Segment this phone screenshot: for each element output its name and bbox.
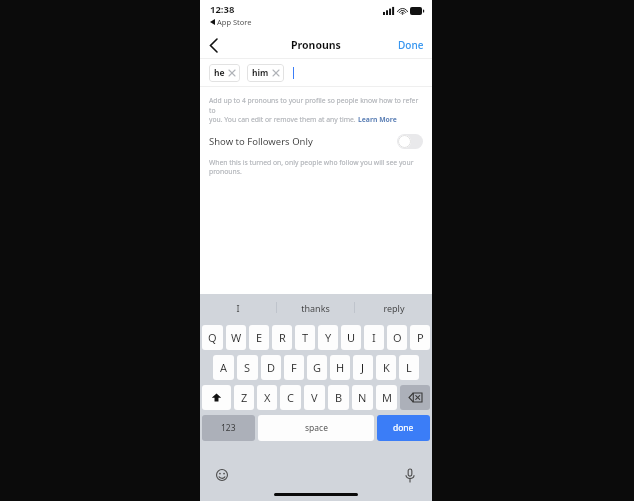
staticText: L	[406, 360, 412, 375]
staticText: O	[393, 330, 402, 345]
staticText: pronouns.	[209, 167, 242, 176]
button[interactable]: Backspace	[400, 385, 430, 410]
staticText: Learn More	[358, 115, 397, 124]
button[interactable]: N	[352, 385, 373, 410]
staticText: E	[256, 330, 263, 345]
button[interactable]: Z	[234, 385, 254, 410]
button[interactable]: D	[261, 355, 281, 380]
staticText: Show to Followers Only	[209, 135, 313, 148]
button[interactable]: P	[410, 325, 430, 350]
staticText: C	[287, 390, 294, 405]
button[interactable]: thanks	[277, 294, 354, 321]
button[interactable]: T	[295, 325, 315, 350]
button[interactable]: M	[376, 385, 397, 410]
staticText: I	[372, 330, 376, 345]
staticText: reply	[383, 302, 405, 314]
button[interactable]: Y	[318, 325, 338, 350]
staticText: R	[279, 330, 286, 345]
staticText: X	[264, 390, 271, 405]
button[interactable]: K	[376, 355, 396, 380]
button[interactable]: X	[257, 385, 277, 410]
staticText: I	[236, 302, 240, 314]
button[interactable]: Show to Followers Only	[200, 124, 432, 158]
button[interactable]: I	[200, 294, 276, 321]
staticText: he	[214, 67, 225, 79]
button[interactable]: B	[328, 385, 349, 410]
staticText: K	[383, 360, 390, 375]
button[interactable]: O	[387, 325, 407, 350]
staticText: G	[313, 360, 322, 375]
staticText: him	[252, 67, 269, 79]
button[interactable]: Q	[202, 325, 223, 350]
staticText: V	[311, 390, 318, 405]
staticText: P	[417, 330, 424, 345]
button[interactable]: Learn More	[358, 115, 397, 124]
button[interactable]: L	[399, 355, 419, 380]
staticText: Add up to 4 pronouns to your profile so …	[209, 96, 420, 115]
staticText: Z	[241, 390, 248, 405]
staticText: App Store	[217, 17, 252, 27]
staticText: U	[347, 330, 356, 345]
button[interactable]: 123	[202, 415, 255, 441]
staticText: you. You can edit or remove them at any …	[209, 115, 358, 124]
staticText: done	[393, 422, 414, 434]
staticText: Pronouns	[291, 38, 341, 52]
staticText: B	[335, 390, 343, 405]
button[interactable]: Show to Followers Only toggle	[397, 134, 423, 149]
button[interactable]: A	[213, 355, 234, 380]
staticText: H	[336, 360, 345, 375]
staticText: M	[382, 390, 392, 405]
button[interactable]: J	[353, 355, 373, 380]
staticText: 12:38	[210, 3, 235, 16]
button[interactable]: V	[304, 385, 325, 410]
button[interactable]: R	[272, 325, 292, 350]
button[interactable]: him	[247, 64, 284, 82]
staticText: A	[220, 360, 228, 375]
button[interactable]: Dictation	[402, 467, 418, 483]
staticText: thanks	[301, 302, 330, 314]
staticText: N	[358, 390, 367, 405]
button[interactable]: H	[330, 355, 350, 380]
staticText: Done	[398, 38, 424, 52]
button[interactable]: space	[258, 415, 374, 441]
button[interactable]: reply	[355, 294, 432, 321]
staticText: S	[244, 360, 251, 375]
staticText: 123	[221, 422, 236, 434]
button[interactable]: W	[226, 325, 246, 350]
staticText: Q	[208, 330, 217, 345]
button[interactable]: G	[307, 355, 327, 380]
staticText: T	[302, 330, 309, 345]
button[interactable]: Done	[390, 34, 432, 56]
staticText: W	[231, 330, 242, 345]
staticText: D	[267, 360, 276, 375]
button[interactable]: Shift	[202, 385, 231, 410]
button[interactable]: E	[249, 325, 269, 350]
button[interactable]: U	[341, 325, 361, 350]
button[interactable]: done	[377, 415, 430, 441]
staticText: Y	[325, 330, 332, 345]
button[interactable]: Back	[200, 32, 226, 58]
button[interactable]: I	[364, 325, 384, 350]
button[interactable]: S	[237, 355, 258, 380]
staticText: J	[361, 360, 365, 375]
button[interactable]: Emoji	[214, 467, 230, 483]
staticText: When this is turned on, only people who …	[209, 158, 414, 167]
staticText: F	[291, 360, 297, 375]
staticText: space	[305, 422, 328, 434]
button[interactable]: he	[209, 64, 240, 82]
button[interactable]: F	[284, 355, 304, 380]
button[interactable]: C	[280, 385, 301, 410]
